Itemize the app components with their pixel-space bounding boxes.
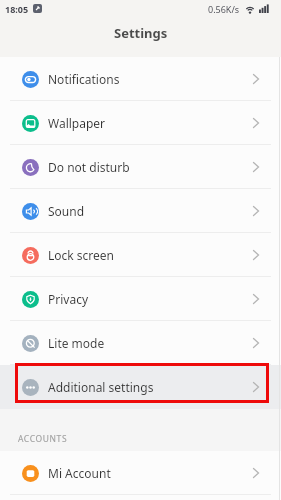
button[interactable]: Additional settings <box>0 365 281 409</box>
staticText: Privacy <box>48 291 89 307</box>
staticText: Settings <box>114 24 168 42</box>
staticText: Wallpaper <box>48 115 106 131</box>
button[interactable]: Lock screen <box>0 233 281 277</box>
button[interactable]: Notifications <box>0 57 281 101</box>
staticText: Additional settings <box>48 379 154 395</box>
button[interactable]: Lite mode <box>0 321 281 365</box>
staticText: 0.56K/s <box>208 3 240 15</box>
staticText: Mi Account <box>48 465 111 481</box>
staticText: Notifications <box>48 71 120 87</box>
button[interactable]: Sound <box>0 189 281 233</box>
button[interactable]: Privacy <box>0 277 281 321</box>
button[interactable]: Wallpaper <box>0 101 281 145</box>
staticText: Do not disturb <box>48 159 130 175</box>
button[interactable]: Do not disturb <box>0 145 281 189</box>
staticText: Sound <box>48 203 85 219</box>
staticText: 18:05 <box>5 3 29 15</box>
staticText: Lock screen <box>48 247 115 263</box>
staticText: Lite mode <box>48 335 105 351</box>
staticText: ACCOUNTS <box>18 433 68 445</box>
button[interactable]: Mi Account <box>0 451 281 495</box>
